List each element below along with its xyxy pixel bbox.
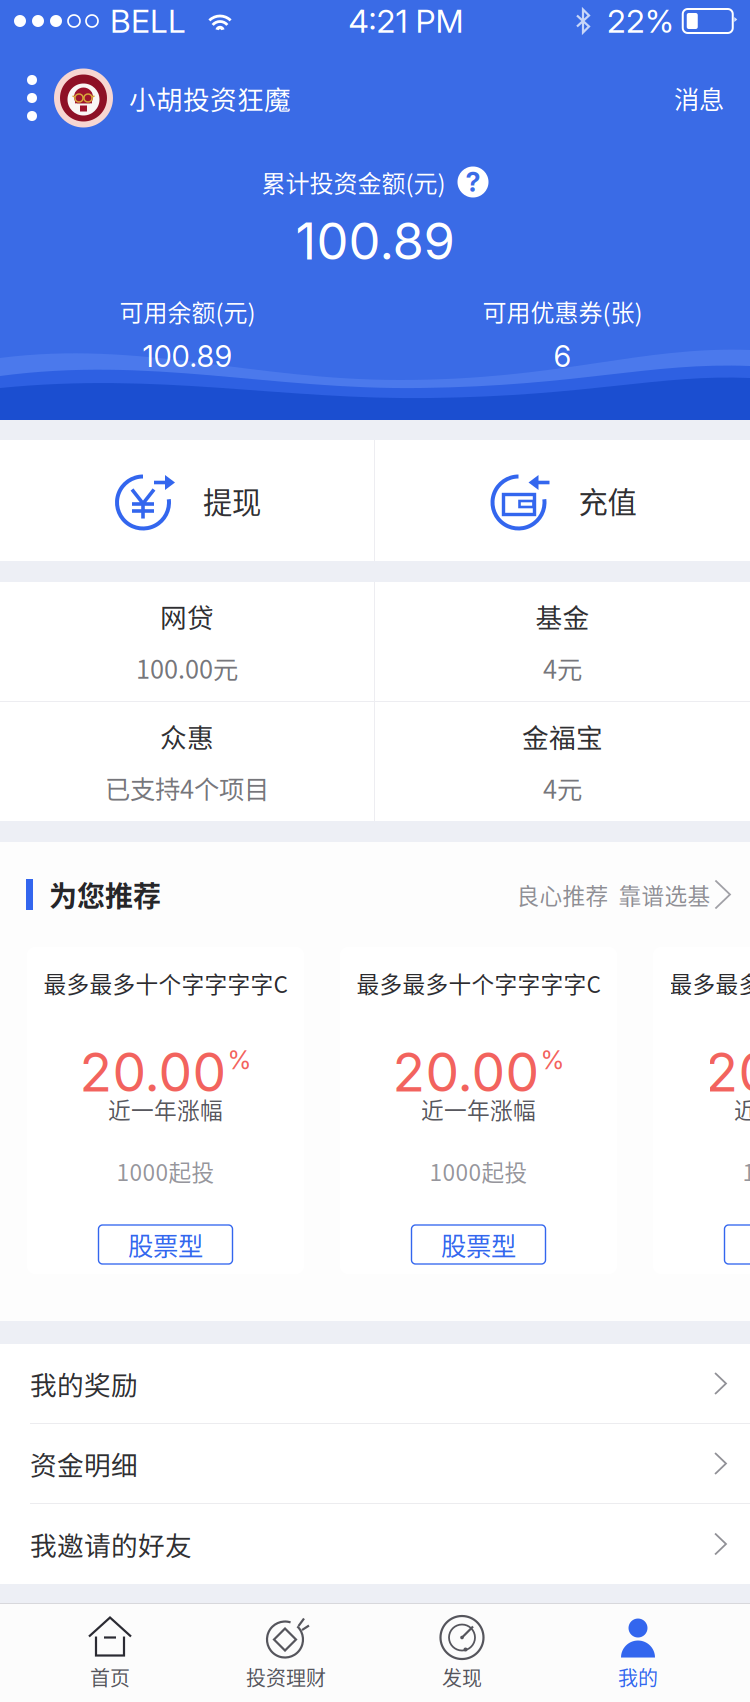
staticText: 可用余额(元) (119, 294, 255, 329)
button[interactable]: Help (457, 166, 488, 197)
staticText: 我的奖励 (30, 1364, 138, 1403)
button[interactable]: 网贷 (0, 582, 374, 701)
button[interactable]: 资金明细 (0, 1424, 750, 1504)
staticText: 1000起投 (742, 1155, 750, 1187)
staticText: % (227, 1045, 251, 1075)
staticText: 投资理财 (246, 1662, 326, 1691)
staticText: 22% (607, 2, 674, 40)
staticText: 股票型 (441, 1226, 516, 1263)
staticText: 我的 (618, 1662, 658, 1691)
staticText: 首页 (90, 1662, 130, 1691)
staticText: 6 (553, 339, 571, 374)
button[interactable]: 基金 (375, 582, 750, 701)
button[interactable]: 金福宝 (375, 702, 750, 821)
staticText: 1000起投 (116, 1155, 214, 1187)
staticText: 充值 (578, 479, 636, 522)
staticText: 4:21 PM (348, 2, 463, 40)
button[interactable]: 提现 (0, 440, 374, 561)
staticText: 最多最多十个字字字字C (43, 967, 287, 999)
button[interactable]: 众惠 (0, 702, 374, 821)
button[interactable]: 良心推荐 靠谱选基 (516, 868, 732, 921)
staticText: 近一年涨幅 (108, 1093, 223, 1125)
staticText: 消息 (674, 80, 724, 116)
staticText: 可用优惠券(张) (482, 294, 642, 329)
staticText: 4元 (543, 649, 582, 686)
button[interactable]: 首页 (22, 1604, 198, 1702)
staticText: 网贷 (160, 597, 214, 635)
staticText: 1000起投 (429, 1155, 527, 1187)
staticText: 4元 (543, 769, 582, 806)
staticText: 20.00 (79, 1040, 226, 1104)
staticText: 100.89 (142, 339, 232, 374)
staticText: 100.00元 (136, 649, 238, 686)
staticText: % (540, 1045, 564, 1075)
staticText: 20.00 (705, 1040, 750, 1104)
staticText: 良心推荐 靠谱选基 (516, 878, 710, 911)
staticText: 100.89 (295, 210, 454, 272)
staticText: 我邀请的好友 (30, 1525, 192, 1563)
button[interactable]: 我的 (550, 1604, 726, 1702)
staticText: 最多最多十个字字字字C (356, 967, 600, 999)
button[interactable]: 消息 (648, 66, 750, 130)
button[interactable]: 投资理财 (198, 1604, 374, 1702)
staticText: 近一年涨幅 (421, 1093, 536, 1125)
staticText: 提现 (203, 479, 261, 522)
staticText: BELL (110, 2, 186, 40)
staticText: 发现 (442, 1662, 482, 1691)
staticText: 已支持4个项目 (105, 769, 269, 806)
staticText: 金福宝 (522, 717, 603, 755)
button[interactable]: 我的奖励 (0, 1344, 750, 1424)
staticText: 股票型 (128, 1226, 203, 1263)
button[interactable]: 发现 (374, 1604, 550, 1702)
button[interactable]: 充值 (375, 440, 750, 561)
staticText: 20.00 (392, 1040, 539, 1104)
button[interactable]: 我邀请的好友 (0, 1504, 750, 1584)
staticText: 基金 (535, 597, 589, 635)
staticText: 小胡投资狂魔 (129, 79, 291, 117)
staticText: 资金明细 (30, 1444, 138, 1483)
staticText: 近一年涨幅 (734, 1093, 750, 1125)
staticText: ? (465, 166, 480, 198)
staticText: 最多最多十个字字字字C (669, 967, 750, 999)
staticText: 累计投资金额(元) (261, 165, 445, 199)
staticText: 为您推荐 (49, 874, 161, 915)
button[interactable]: Menu (10, 67, 54, 129)
staticText: 众惠 (160, 717, 214, 755)
